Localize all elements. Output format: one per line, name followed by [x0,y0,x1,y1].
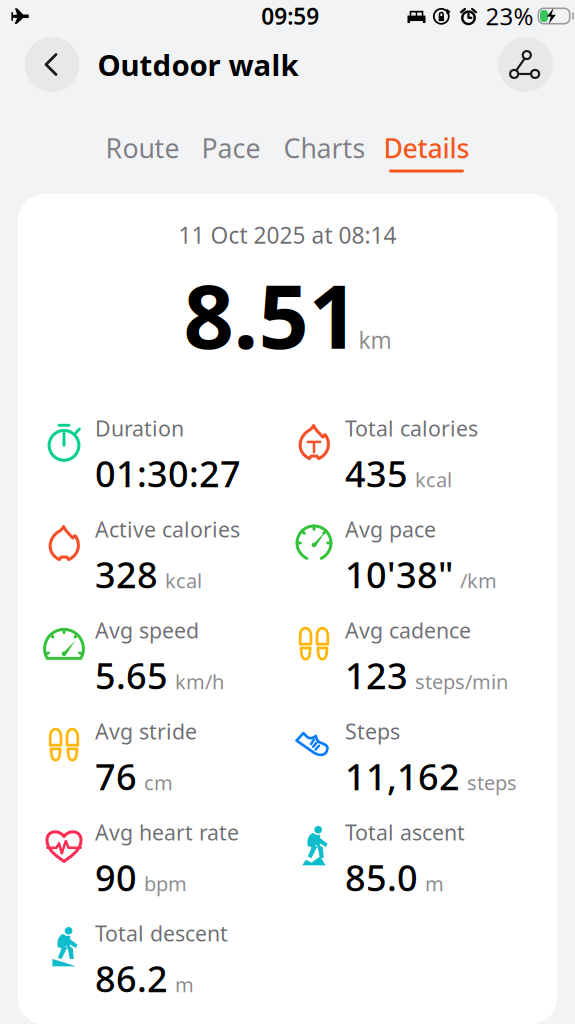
staticText: km/h [175,668,224,695]
staticText: Total descent [95,919,228,947]
staticText: 01:30:27 [95,449,241,497]
staticText: /km [460,567,497,594]
staticText: Avg cadence [345,616,471,644]
staticText: 23% [485,0,533,32]
button[interactable]: Details [383,134,469,172]
staticText: 86.2 [95,954,168,1002]
staticText: kcal [165,567,202,594]
staticText: 5.65 [95,651,168,699]
staticText: Duration [95,414,184,442]
staticText: cm [144,769,173,796]
staticText: 90 [95,853,137,901]
staticText: m [425,870,444,897]
staticText: 10'38" [345,550,453,598]
staticText: Outdoor walk [97,45,298,84]
staticText: Charts [283,130,365,166]
staticText: 11,162 [345,752,460,800]
staticText: Total ascent [345,818,465,846]
staticText: m [175,971,194,998]
staticText: 123 [345,651,408,699]
staticText: 76 [95,752,137,800]
button[interactable]: Share [498,37,553,92]
staticText: km [358,325,391,355]
staticText: Route [105,130,179,166]
staticText: 328 [95,550,158,598]
staticText: Pace [201,130,260,166]
button[interactable]: Charts [283,134,365,172]
button[interactable]: Route [105,134,179,172]
staticText: 85.0 [345,853,418,901]
staticText: 435 [345,449,408,497]
staticText: Avg pace [345,515,436,543]
button[interactable]: Pace [201,134,260,172]
button[interactable]: Back [24,37,79,92]
staticText: Avg speed [95,616,199,644]
staticText: Total calories [345,414,478,442]
staticText: steps/min [415,668,508,695]
staticText: Steps [345,717,400,745]
staticText: 11 Oct 2025 at 08:14 [178,220,396,250]
staticText: 09:59 [261,1,319,31]
staticText: 8.51 [183,256,358,373]
staticText: bpm [144,870,187,897]
staticText: Avg heart rate [95,818,239,846]
staticText: Details [383,130,469,166]
staticText: Active calories [95,515,240,543]
staticText: kcal [415,466,452,493]
staticText: steps [467,769,517,796]
staticText: Avg stride [95,717,197,745]
